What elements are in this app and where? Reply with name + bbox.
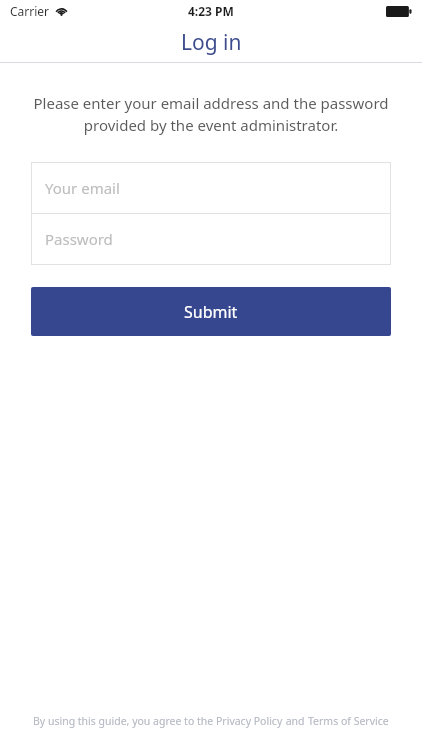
staticText: and — [283, 714, 308, 728]
staticText: Log in — [181, 28, 242, 57]
staticText: Privacy Policy — [216, 714, 283, 728]
staticText: Terms of Service — [308, 714, 389, 728]
staticText: Your email — [45, 178, 120, 198]
button[interactable]: Terms of Service — [308, 714, 389, 728]
button[interactable]: Password — [31, 214, 391, 264]
staticText: 4:23 PM — [188, 3, 234, 19]
staticText: Password — [45, 229, 113, 249]
staticText: Carrier — [10, 3, 50, 19]
button[interactable]: Privacy Policy — [216, 714, 283, 728]
button[interactable]: Your email — [31, 163, 391, 213]
staticText: Submit — [184, 301, 238, 323]
staticText: Please enter your email address and the … — [22, 93, 400, 136]
staticText: By using this guide, you agree to the — [33, 714, 216, 728]
button[interactable]: Submit — [31, 287, 391, 336]
